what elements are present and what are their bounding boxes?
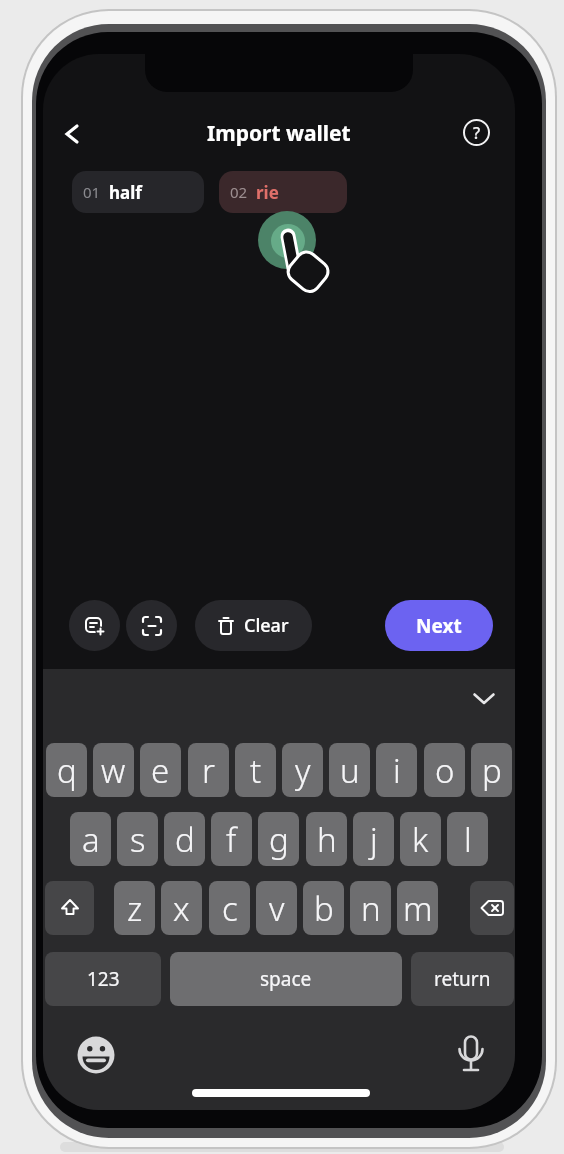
button[interactable]: return (411, 952, 514, 1006)
button[interactable]: x (161, 881, 202, 935)
staticText: f (226, 817, 237, 862)
staticText: space (260, 966, 312, 992)
button[interactable]: i (376, 743, 417, 797)
button[interactable]: Next (385, 600, 493, 651)
button[interactable]: n (350, 881, 391, 935)
button[interactable]: d (164, 812, 205, 866)
button[interactable]: r (188, 743, 229, 797)
staticText: v (269, 886, 285, 931)
staticText: ? (473, 122, 481, 144)
button[interactable]: o (424, 743, 465, 797)
staticText: u (340, 748, 360, 793)
button[interactable]: w (93, 743, 134, 797)
staticText: q (57, 748, 77, 793)
button[interactable]: f (211, 812, 252, 866)
button[interactable]: l (447, 812, 488, 866)
staticText: n (361, 886, 381, 931)
button[interactable]: j (353, 812, 394, 866)
button[interactable]: t (235, 743, 276, 797)
staticText: s (130, 817, 146, 862)
staticText: i (393, 748, 401, 793)
staticText: p (482, 748, 502, 793)
button[interactable]: 01 (72, 171, 204, 213)
button[interactable]: Clear (195, 600, 312, 651)
staticText: e (151, 748, 170, 793)
button[interactable]: z (114, 881, 155, 935)
staticText: l (464, 817, 472, 862)
button[interactable] (464, 684, 504, 714)
staticText: half (109, 181, 142, 204)
button[interactable] (45, 881, 94, 935)
button[interactable]: v (256, 881, 297, 935)
button[interactable] (53, 115, 91, 153)
staticText: z (127, 886, 143, 931)
button[interactable] (78, 1037, 118, 1077)
button[interactable]: e (140, 743, 181, 797)
staticText: o (435, 748, 455, 793)
button[interactable]: b (303, 881, 344, 935)
button[interactable]: y (282, 743, 323, 797)
staticText: return (434, 966, 491, 992)
button[interactable]: q (46, 743, 87, 797)
button[interactable]: g (258, 812, 299, 866)
staticText: t (250, 748, 262, 793)
button[interactable]: 02 (219, 171, 347, 213)
staticText: c (222, 886, 238, 931)
staticText: Clear (244, 613, 289, 638)
staticText: w (101, 748, 126, 793)
staticText: Import wallet (207, 119, 351, 148)
staticText: h (317, 817, 337, 862)
staticText: 01 (83, 182, 101, 202)
button[interactable]: h (306, 812, 347, 866)
staticText: j (370, 817, 378, 862)
staticText: a (82, 817, 100, 862)
staticText: m (403, 886, 433, 931)
button[interactable]: space (170, 952, 402, 1006)
button[interactable]: ? (463, 119, 490, 146)
staticText: rie (256, 181, 279, 204)
staticText: b (314, 886, 334, 931)
staticText: g (269, 817, 289, 862)
button[interactable]: s (117, 812, 158, 866)
button[interactable]: 123 (45, 952, 161, 1006)
staticText: d (175, 817, 195, 862)
staticText: r (202, 748, 216, 793)
staticText: Next (416, 613, 462, 639)
staticText: 02 (230, 182, 248, 202)
staticText: y (295, 748, 311, 793)
button[interactable]: a (70, 812, 111, 866)
button[interactable]: u (329, 743, 370, 797)
button[interactable]: c (209, 881, 250, 935)
staticText: x (173, 886, 190, 931)
button[interactable]: p (471, 743, 512, 797)
button[interactable] (69, 600, 120, 651)
button[interactable]: m (397, 881, 438, 935)
staticText: 123 (87, 966, 120, 992)
button[interactable] (126, 600, 177, 651)
button[interactable] (470, 881, 514, 935)
staticText: k (412, 817, 429, 862)
button[interactable]: k (400, 812, 441, 866)
button[interactable] (451, 1036, 491, 1076)
